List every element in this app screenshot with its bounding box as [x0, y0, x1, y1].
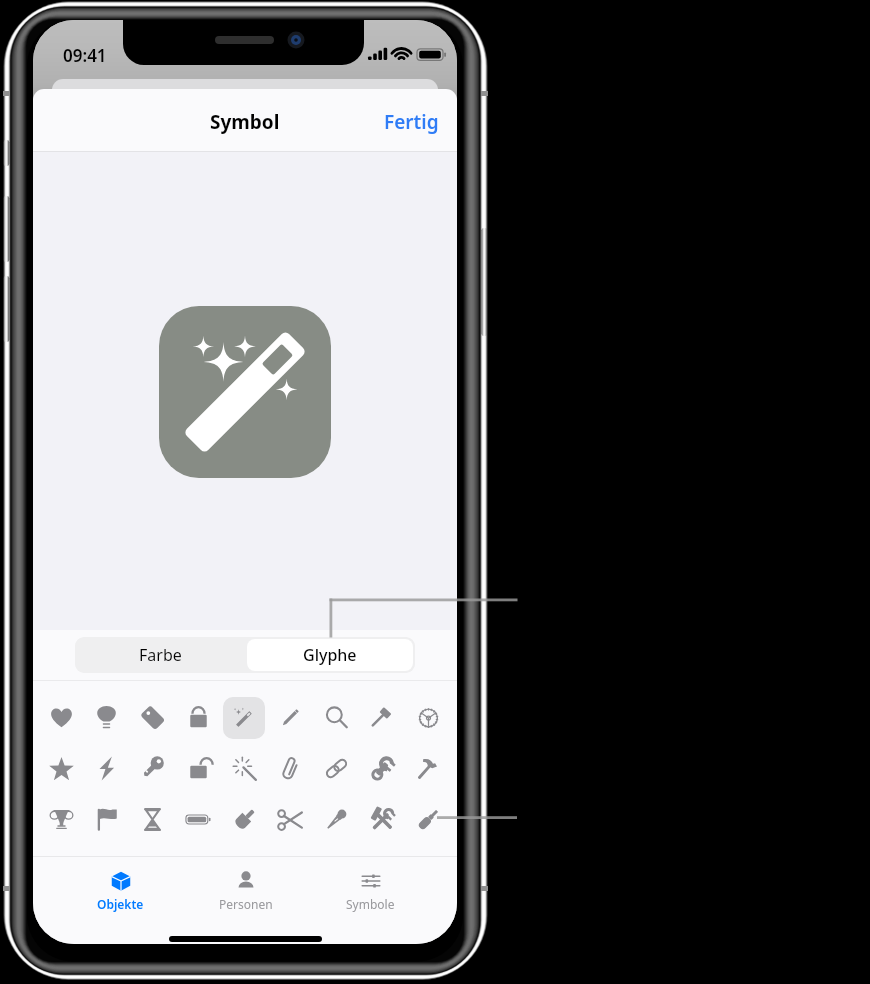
button[interactable]: wrench	[359, 743, 405, 794]
button[interactable]: tag	[129, 692, 175, 743]
button[interactable]: paintbrush	[221, 794, 267, 845]
button[interactable]: Glyphe	[247, 639, 413, 671]
button[interactable]: Farbe	[75, 637, 245, 673]
button[interactable]: link	[313, 743, 359, 794]
button[interactable]: heart	[39, 692, 84, 743]
staticText: Glyphe	[303, 644, 357, 666]
staticText: Symbole	[346, 896, 395, 912]
button[interactable]: unlock	[175, 743, 221, 794]
button[interactable]: bolt	[84, 743, 129, 794]
button[interactable]: Fertig	[378, 102, 445, 142]
button[interactable]: trophy	[39, 794, 84, 845]
staticText: Objekte	[97, 896, 144, 912]
staticText: Farbe	[139, 644, 182, 666]
button[interactable]: tools	[359, 794, 405, 845]
button[interactable]: dropper	[313, 794, 359, 845]
button[interactable]: scissors	[267, 794, 313, 845]
button[interactable]: hammer	[405, 743, 451, 794]
button[interactable]: flag	[84, 794, 129, 845]
button[interactable]: Symbole	[308, 857, 433, 912]
staticText: Personen	[219, 896, 273, 912]
staticText: Fertig	[384, 109, 439, 135]
button[interactable]: key	[129, 743, 175, 794]
button[interactable]: pencil	[267, 692, 313, 743]
button[interactable]: hammer2	[359, 692, 405, 743]
button[interactable]: screwdriver	[405, 794, 451, 845]
button[interactable]: sparkle	[221, 743, 267, 794]
button[interactable]: hourglass	[129, 794, 175, 845]
button[interactable]: battery	[175, 794, 221, 845]
button[interactable]: gear	[405, 692, 451, 743]
staticText: Symbol	[210, 109, 280, 135]
button[interactable]: lock	[175, 692, 221, 743]
button[interactable]: star	[39, 743, 84, 794]
button[interactable]: wand	[221, 692, 267, 743]
button[interactable]: magnify	[313, 692, 359, 743]
button[interactable]: Objekte	[58, 857, 183, 912]
button[interactable]: bulb	[84, 692, 129, 743]
staticText: 09:41	[63, 44, 107, 67]
button[interactable]: paperclip	[267, 743, 313, 794]
button[interactable]: Personen	[183, 857, 308, 912]
